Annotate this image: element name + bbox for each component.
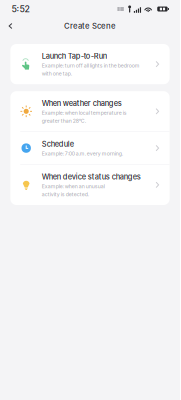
staticText: Example: when local temperature is great…: [42, 110, 127, 124]
staticText: When weather changes: [42, 99, 122, 108]
staticText: Example: turn off all lights in the bedr…: [42, 62, 140, 77]
staticText: Schedule: [42, 139, 74, 148]
staticText: 5:52: [12, 4, 30, 14]
button[interactable]: When weather changes: [10, 91, 170, 131]
staticText: Example: 7:00 a.m. every morning.: [42, 150, 123, 157]
staticText: Launch Tap-to-Run: [42, 51, 107, 60]
staticText: Example: when an unusual activity is det…: [42, 183, 105, 197]
button[interactable]: Back: [0, 18, 21, 34]
staticText: Create Scene: [64, 21, 116, 31]
button[interactable]: Schedule: [10, 132, 170, 164]
staticText: When device status changes: [42, 172, 141, 181]
button[interactable]: Launch Tap-to-Run: [10, 44, 170, 84]
button[interactable]: When device status changes: [10, 165, 170, 205]
